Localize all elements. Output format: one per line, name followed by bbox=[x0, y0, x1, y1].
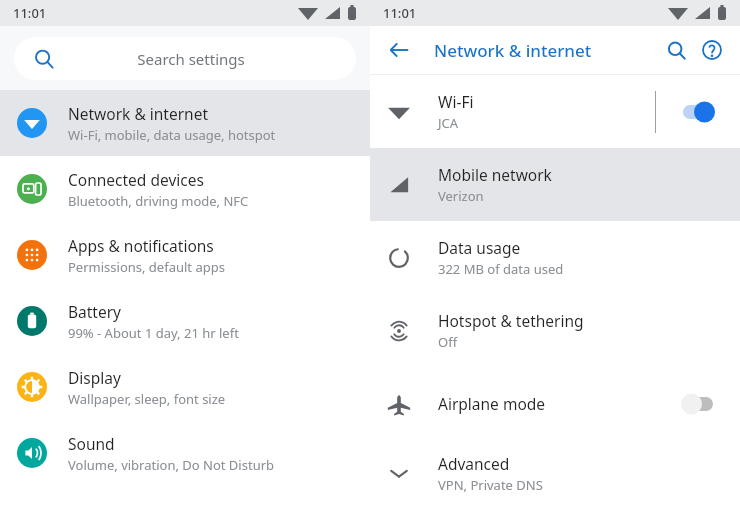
staticText: Wallpaper, sleep, font size bbox=[68, 390, 226, 408]
staticText: Apps & notifications bbox=[68, 235, 214, 256]
button[interactable]: Advanced bbox=[370, 440, 740, 506]
staticText: Connected devices bbox=[68, 169, 204, 190]
staticText: Network & internet bbox=[434, 39, 658, 62]
staticText: Data usage bbox=[438, 237, 521, 258]
staticText: Sound bbox=[68, 433, 115, 454]
staticText: Search settings bbox=[40, 49, 342, 69]
button[interactable]: Toggle Wi-Fi bbox=[678, 95, 718, 129]
button[interactable]: Search bbox=[658, 32, 694, 68]
button[interactable]: Display bbox=[0, 354, 370, 420]
staticText: Off bbox=[438, 333, 458, 351]
button[interactable]: Apps & notifications bbox=[0, 222, 370, 288]
button[interactable]: Sound bbox=[0, 420, 370, 486]
staticText: Wi-Fi, mobile, data usage, hotspot bbox=[68, 126, 276, 144]
staticText: Permissions, default apps bbox=[68, 258, 225, 276]
button[interactable]: Search settings bbox=[14, 37, 356, 80]
staticText: 11:01 bbox=[383, 4, 417, 22]
staticText: Bluetooth, driving mode, NFC bbox=[68, 192, 249, 210]
button[interactable]: Airplane mode bbox=[370, 367, 740, 440]
staticText: Wi-Fi bbox=[438, 91, 474, 112]
button[interactable]: Data usage bbox=[370, 221, 740, 294]
button[interactable]: Hotspot & tethering bbox=[370, 294, 740, 367]
staticText: Advanced bbox=[438, 453, 510, 474]
staticText: JCA bbox=[438, 114, 459, 132]
button[interactable]: Connected devices bbox=[0, 156, 370, 222]
button[interactable]: Mobile network bbox=[370, 148, 740, 221]
staticText: Airplane mode bbox=[438, 393, 546, 414]
button[interactable]: Help bbox=[694, 32, 730, 68]
button[interactable]: Toggle Airplane mode bbox=[678, 387, 718, 421]
staticText: Volume, vibration, Do Not Disturb bbox=[68, 456, 275, 474]
staticText: VPN, Private DNS bbox=[438, 476, 543, 494]
staticText: 99% - About 1 day, 21 hr left bbox=[68, 324, 239, 342]
button[interactable]: Back bbox=[382, 33, 416, 67]
staticText: Verizon bbox=[438, 187, 484, 205]
staticText: Hotspot & tethering bbox=[438, 310, 584, 331]
button[interactable]: Battery bbox=[0, 288, 370, 354]
staticText: Network & internet bbox=[68, 103, 208, 124]
staticText: 322 MB of data used bbox=[438, 260, 564, 278]
button[interactable]: Network & internet bbox=[0, 90, 370, 156]
staticText: Display bbox=[68, 367, 121, 388]
staticText: 11:01 bbox=[13, 4, 47, 22]
staticText: Battery bbox=[68, 301, 122, 322]
staticText: Mobile network bbox=[438, 164, 552, 185]
button[interactable]: Wi-Fi bbox=[370, 75, 740, 148]
